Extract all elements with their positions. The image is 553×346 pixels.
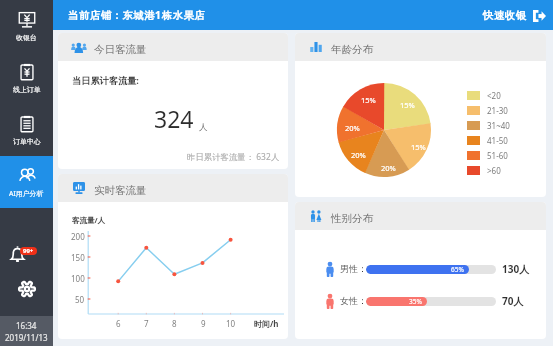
staticText: 15%	[411, 142, 426, 152]
staticText: 性别分布	[331, 212, 373, 225]
button[interactable]: 快速收银	[483, 5, 546, 26]
staticText: 20%	[381, 163, 396, 173]
staticText: >60	[487, 165, 501, 176]
staticText: 7	[144, 318, 149, 329]
staticText: 今日客流量	[94, 43, 147, 56]
button[interactable]: AI用户分析	[0, 156, 53, 208]
button[interactable]: Settings	[0, 271, 53, 307]
staticText: 130人	[502, 262, 530, 276]
staticText: 时间/h	[254, 318, 279, 329]
staticText: 昨日累计客流量： 632人	[187, 151, 280, 162]
staticText: 15%	[361, 95, 376, 105]
staticText: 20%	[345, 123, 360, 133]
staticText: 51-60	[487, 150, 508, 161]
button[interactable]: 收银台	[0, 0, 53, 52]
staticText: 41-50	[487, 135, 508, 146]
staticText: 订单中心	[13, 137, 41, 146]
staticText: 9	[201, 318, 206, 329]
staticText: 8	[172, 318, 177, 329]
staticText: 线上订单	[13, 85, 41, 94]
staticText: 15%	[400, 100, 415, 110]
button[interactable]: 线上订单	[0, 52, 53, 104]
staticText: 当前店铺：东城港1栋水果店	[68, 8, 206, 22]
button[interactable]: 订单中心	[0, 104, 53, 156]
staticText: 100	[71, 273, 85, 284]
staticText: 年龄分布	[331, 43, 373, 56]
staticText: 20%	[351, 150, 366, 160]
staticText: 2019/11/13	[5, 332, 48, 343]
staticText: 70人	[502, 294, 524, 308]
staticText: <20	[487, 90, 501, 101]
staticText: 35%	[409, 297, 422, 306]
staticText: 10	[226, 318, 236, 329]
staticText: 6	[116, 318, 121, 329]
staticText: 200	[71, 231, 85, 242]
staticText: 99+	[23, 247, 34, 255]
staticText: 男性：	[340, 263, 367, 274]
staticText: 快速收银	[483, 9, 527, 22]
button[interactable]: Notifications	[0, 237, 53, 271]
staticText: 16:34	[16, 320, 37, 331]
staticText: 客流量/人	[72, 215, 106, 225]
staticText: 65%	[451, 265, 464, 274]
staticText: 31~40	[487, 120, 510, 131]
staticText: 当日累计客流量:	[72, 74, 139, 87]
staticText: 324	[154, 103, 194, 134]
staticText: 21-30	[487, 105, 508, 116]
staticText: 50	[75, 294, 85, 305]
staticText: AI用户分析	[9, 189, 44, 198]
staticText: 150	[71, 252, 85, 263]
staticText: 女性：	[340, 295, 367, 306]
staticText: 人	[199, 122, 208, 133]
staticText: 实时客流量	[94, 184, 147, 197]
staticText: 收银台	[16, 33, 37, 42]
